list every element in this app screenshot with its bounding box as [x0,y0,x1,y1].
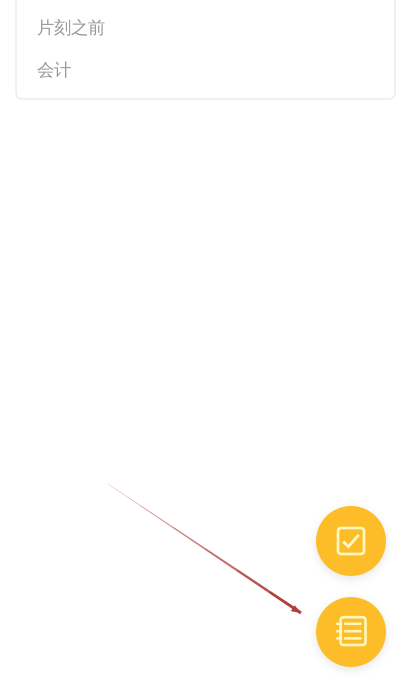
button[interactable]: 片刻之前 [16,0,395,99]
staticText: 片刻之前 [37,17,105,38]
button[interactable]: New task [316,506,386,576]
button[interactable]: New note [316,597,386,667]
staticText: 会计 [37,59,71,81]
